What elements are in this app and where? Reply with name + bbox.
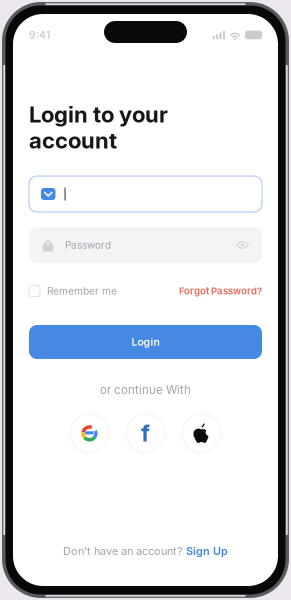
- staticText: Password: [65, 239, 111, 251]
- button[interactable]: Don't have an account?: [63, 543, 228, 559]
- staticText: 9:41: [29, 29, 50, 41]
- button[interactable]: Sign in with Google: [70, 414, 109, 453]
- button[interactable]: Remember me: [29, 284, 117, 298]
- staticText: Login to your: [29, 101, 168, 128]
- staticText: Don't have an account?: [63, 544, 186, 558]
- button[interactable]: Forgot Password?: [179, 284, 262, 298]
- staticText: Login: [131, 336, 159, 348]
- button[interactable]: Sign in with Facebook: [126, 414, 165, 453]
- button[interactable]: Login: [29, 325, 262, 359]
- staticText: Remember me: [47, 285, 117, 297]
- button[interactable]: Sign in with Apple: [182, 414, 221, 453]
- staticText: f: [141, 420, 150, 447]
- staticText: account: [29, 127, 117, 154]
- staticText: Sign Up: [186, 544, 228, 558]
- staticText: Forgot Password?: [179, 285, 262, 297]
- staticText: or continue With: [100, 383, 191, 397]
